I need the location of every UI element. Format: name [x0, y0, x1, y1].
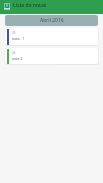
button[interactable]: 25	[5, 28, 98, 45]
button[interactable]: Abril 2016	[5, 15, 98, 26]
staticText: 25	[12, 31, 16, 35]
button[interactable]: 26	[5, 48, 98, 64]
staticText: Abril 2016	[40, 17, 64, 24]
staticText: 26	[12, 51, 16, 55]
staticText: Lista de notas	[13, 2, 47, 9]
button[interactable]: App icon	[4, 3, 10, 10]
staticText: nota 2	[12, 56, 23, 61]
staticText: nota : 1	[12, 36, 25, 41]
